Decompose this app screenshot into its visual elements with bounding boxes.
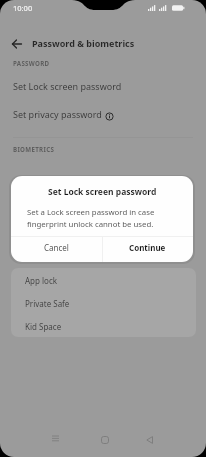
button[interactable]: Set Lock screen password <box>0 78 206 102</box>
staticText: Password & biometrics <box>32 37 135 49</box>
staticText: Set Lock screen password <box>13 80 122 92</box>
staticText: Private Safe <box>25 298 70 309</box>
staticText: Set a Lock screen password in case finge… <box>27 207 155 230</box>
staticText: Set privacy password <box>13 108 102 120</box>
staticText: Continue <box>129 242 166 253</box>
button[interactable]: App lock <box>11 268 196 291</box>
staticText: 10:00 <box>13 3 33 13</box>
staticText: Set Lock screen password <box>48 186 157 198</box>
button[interactable]: Continue <box>102 235 193 259</box>
staticText: PASSWORD <box>13 59 50 67</box>
staticText: BIOMETRICS <box>13 145 55 153</box>
button[interactable] <box>138 431 166 449</box>
button[interactable] <box>8 35 28 53</box>
button[interactable]: Kid Space <box>11 314 196 337</box>
staticText: Kid Space <box>25 321 62 332</box>
staticText: Cancel <box>44 242 69 253</box>
button[interactable] <box>40 431 70 449</box>
button[interactable]: Set privacy password <box>0 106 206 130</box>
button[interactable] <box>90 431 118 449</box>
staticText: App lock <box>25 275 58 286</box>
button[interactable]: Private Safe <box>11 291 196 314</box>
button[interactable]: Cancel <box>11 235 102 259</box>
